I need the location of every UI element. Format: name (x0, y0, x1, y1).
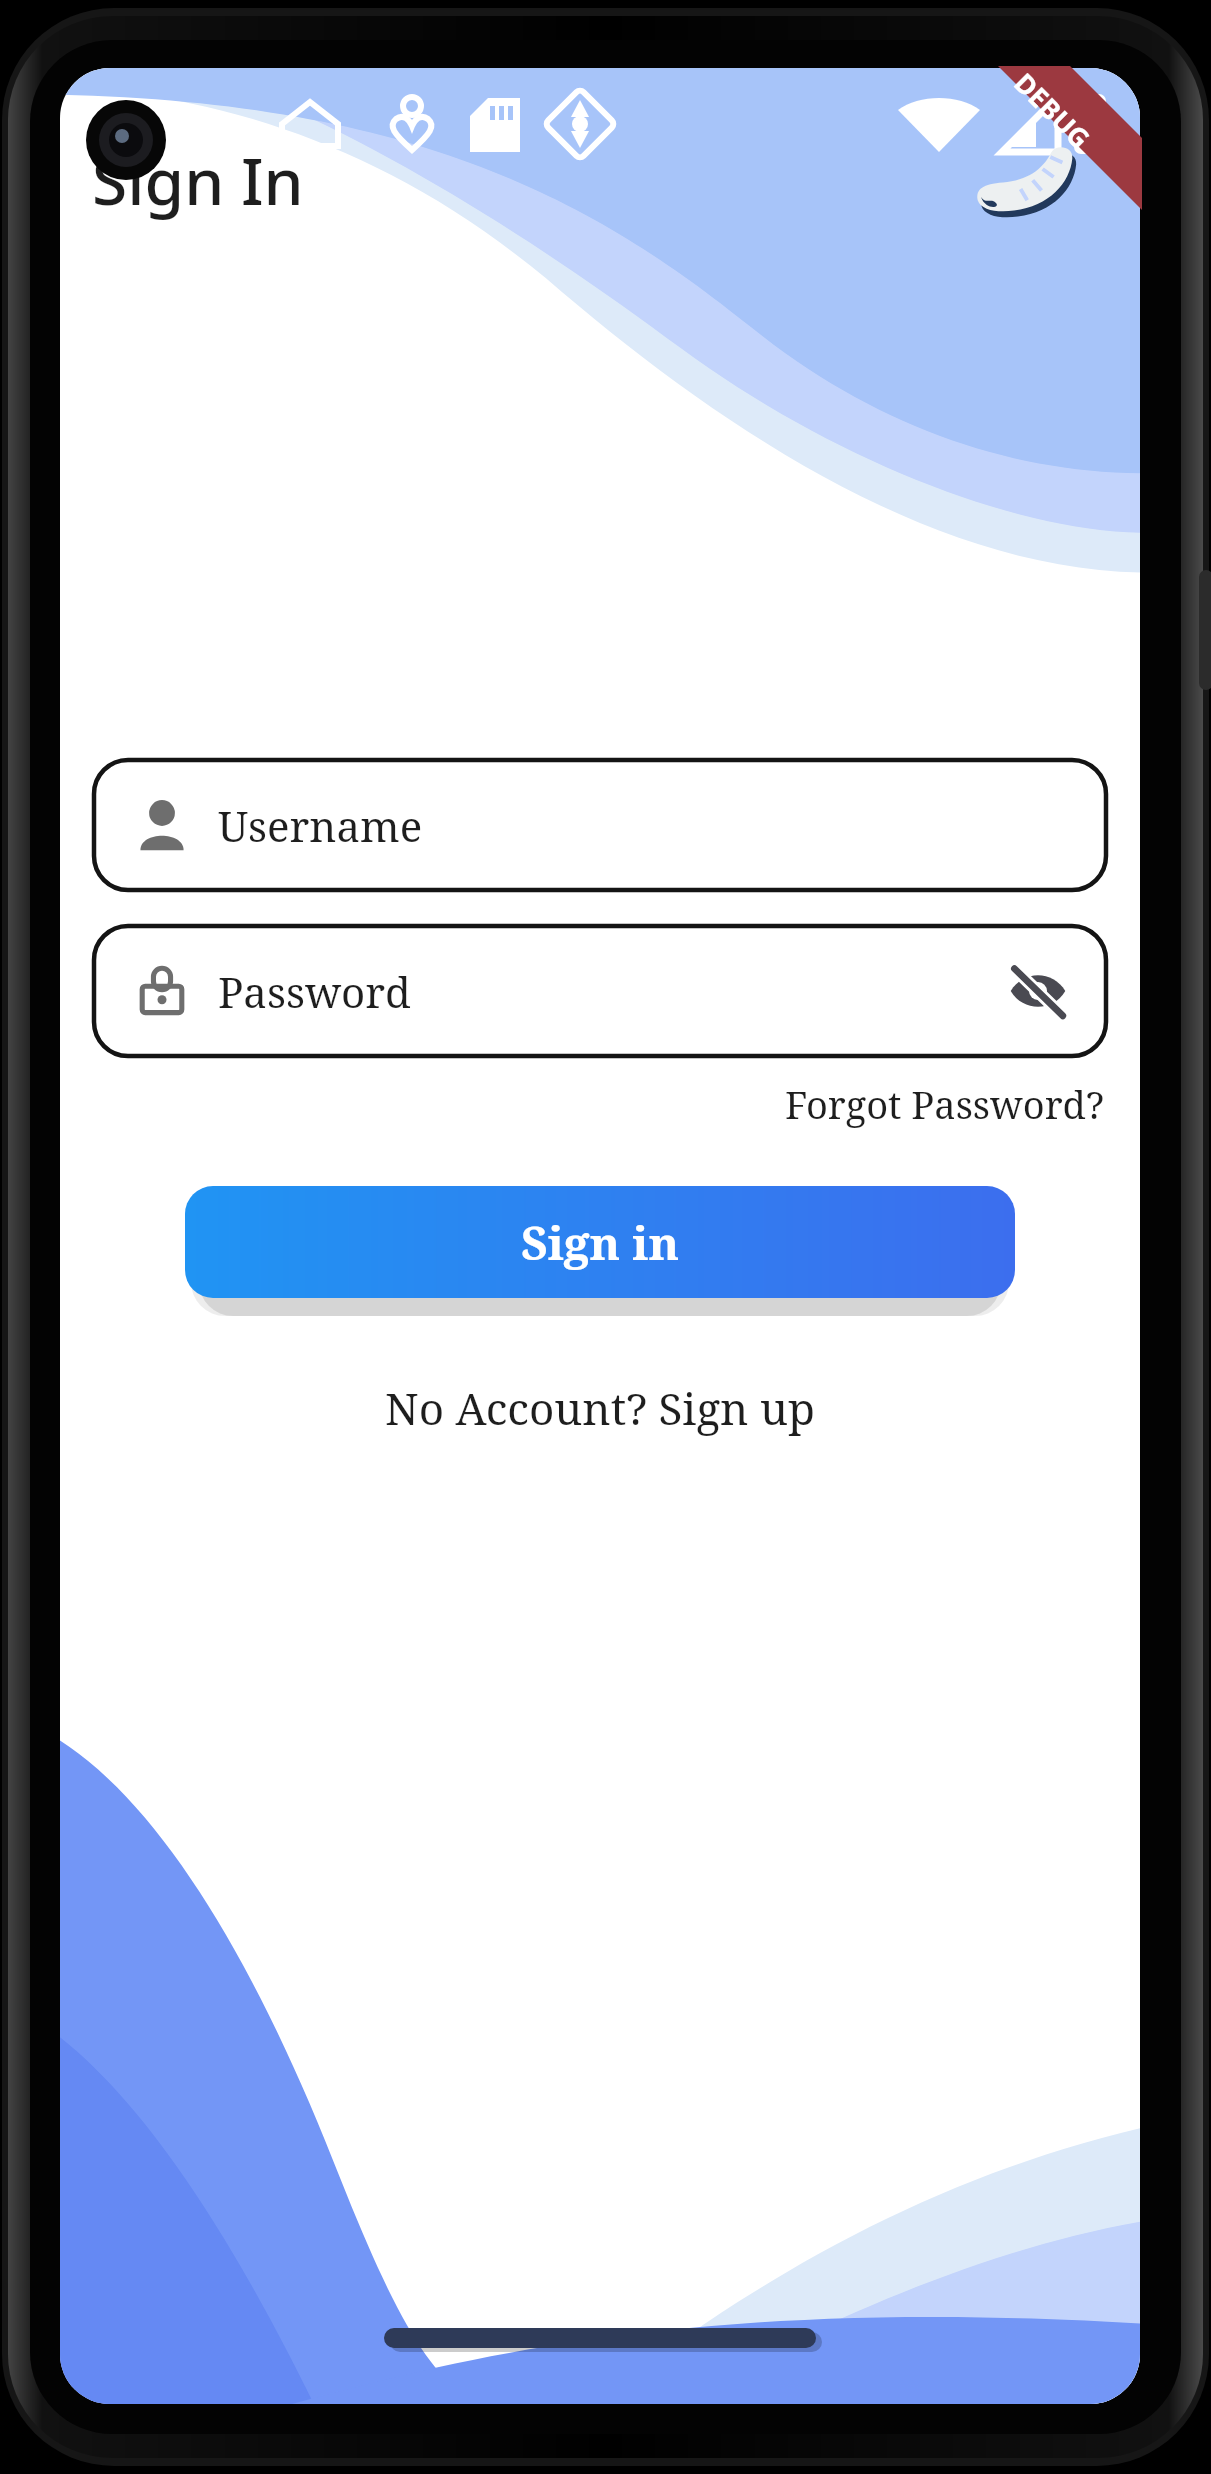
staticText: DEBUG (1006, 64, 1098, 156)
button[interactable]: Toggle password visibility (990, 943, 1086, 1039)
staticText: Username (218, 797, 423, 854)
button[interactable]: Username (92, 758, 1108, 892)
staticText: Password (218, 963, 411, 1020)
button[interactable]: Sign in (185, 1186, 1015, 1298)
staticText: Forgot Password? (785, 1078, 1104, 1130)
staticText: Sign in (521, 1211, 680, 1274)
other: App logo (970, 141, 1080, 221)
staticText: No Account? Sign up (385, 1378, 815, 1438)
button[interactable]: Forgot Password? (771, 1066, 1118, 1142)
button[interactable]: Password (92, 924, 1108, 1058)
button[interactable]: No Account? Sign up (365, 1364, 835, 1452)
staticText: Sign In (92, 137, 304, 224)
